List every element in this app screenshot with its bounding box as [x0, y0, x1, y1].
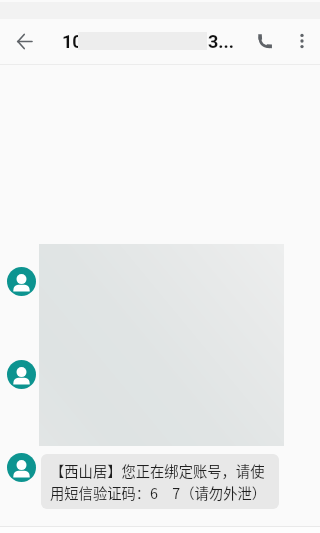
staticText: 10: [62, 31, 83, 52]
button[interactable]: [39, 244, 284, 446]
staticText: 3...: [208, 31, 234, 52]
staticText: 【西山居】您正在绑定账号，请使用短信验证码：6 7（请勿外泄）: [50, 460, 270, 503]
button[interactable]: More options: [282, 21, 320, 61]
button[interactable]: 【西山居】您正在绑定账号，请使用短信验证码：6 7（请勿外泄）: [41, 454, 279, 509]
button[interactable]: Call: [241, 17, 289, 65]
button[interactable]: Back: [0, 17, 48, 65]
